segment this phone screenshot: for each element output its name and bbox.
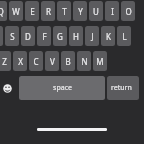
staticText: M: [96, 56, 104, 67]
button[interactable]: F: [37, 26, 51, 46]
button[interactable]: V: [45, 51, 59, 71]
staticText: F: [42, 31, 47, 42]
staticText: S: [10, 31, 15, 42]
button[interactable]: M: [93, 51, 107, 71]
staticText: W: [12, 6, 20, 17]
button[interactable]: T: [57, 1, 71, 21]
staticText: J: [91, 31, 94, 42]
button[interactable]: J: [85, 26, 99, 46]
button[interactable]: Z: [0, 51, 11, 71]
staticText: I: [111, 6, 114, 17]
staticText: K: [106, 31, 111, 42]
staticText: V: [50, 56, 55, 67]
button[interactable]: G: [53, 26, 67, 46]
staticText: B: [65, 56, 71, 67]
button[interactable]: N: [77, 51, 91, 71]
staticText: H: [73, 31, 79, 42]
button[interactable]: S: [5, 26, 19, 46]
button[interactable]: Q: [0, 1, 7, 21]
staticText: X: [18, 56, 23, 67]
button[interactable]: O: [121, 1, 135, 21]
staticText: O: [125, 6, 132, 17]
button[interactable]: Y: [73, 1, 87, 21]
button[interactable]: U: [89, 1, 103, 21]
button[interactable]: K: [101, 26, 115, 46]
staticText: E: [30, 6, 35, 17]
staticText: Q: [0, 6, 4, 17]
staticText: D: [25, 31, 31, 42]
button[interactable]: return: [107, 76, 139, 100]
staticText: T: [62, 6, 67, 17]
staticText: G: [57, 31, 63, 42]
staticText: Z: [2, 56, 7, 67]
staticText: L: [122, 31, 127, 42]
staticText: return: [111, 83, 132, 93]
button[interactable]: B: [61, 51, 75, 71]
staticText: N: [81, 56, 88, 67]
button[interactable]: W: [9, 1, 23, 21]
staticText: space: [53, 83, 72, 93]
staticText: U: [93, 6, 99, 17]
button[interactable]: D: [21, 26, 35, 46]
staticText: R: [46, 6, 51, 17]
button[interactable]: R: [41, 1, 55, 21]
button[interactable]: L: [117, 26, 131, 46]
button[interactable]: Emoji keyboard: [0, 76, 17, 100]
staticText: C: [33, 56, 39, 67]
button[interactable]: H: [69, 26, 83, 46]
button[interactable]: C: [29, 51, 43, 71]
button[interactable]: X: [13, 51, 27, 71]
button[interactable]: E: [25, 1, 39, 21]
button[interactable]: I: [105, 1, 119, 21]
button[interactable]: A: [0, 26, 3, 46]
staticText: Y: [78, 6, 83, 17]
button[interactable]: space: [19, 76, 105, 100]
